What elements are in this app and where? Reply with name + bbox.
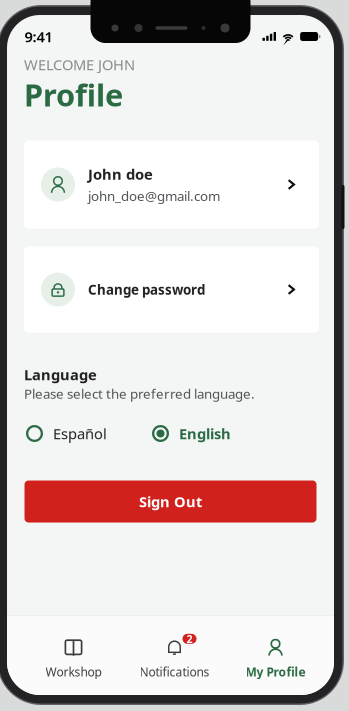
button[interactable]: Sign Out <box>24 480 316 522</box>
button[interactable]: Change password <box>24 246 319 332</box>
staticText: English <box>179 424 231 443</box>
staticText: Change password <box>88 281 205 298</box>
staticText: Please select the preferred language. <box>24 385 255 402</box>
staticText: Profile <box>24 74 123 115</box>
staticText: My Profile <box>245 664 305 680</box>
button[interactable]: John doe <box>24 140 319 228</box>
staticText: John doe <box>88 164 153 184</box>
staticText: Workshop <box>45 664 101 680</box>
staticText: Español <box>53 424 107 443</box>
button[interactable]: Workshop <box>23 608 124 688</box>
staticText: Language <box>24 365 97 384</box>
staticText: 2 <box>186 632 192 646</box>
staticText: Notifications <box>139 664 209 680</box>
staticText: john_doe@gmail.com <box>88 187 220 205</box>
button[interactable]: My Profile <box>225 608 326 688</box>
staticText: 9:41 <box>24 27 52 46</box>
button[interactable]: 2 <box>124 608 225 688</box>
button[interactable]: English <box>152 421 231 445</box>
staticText: Sign Out <box>139 492 202 511</box>
staticText: WELCOME JOHN <box>24 55 135 74</box>
button[interactable]: Español <box>26 421 107 445</box>
